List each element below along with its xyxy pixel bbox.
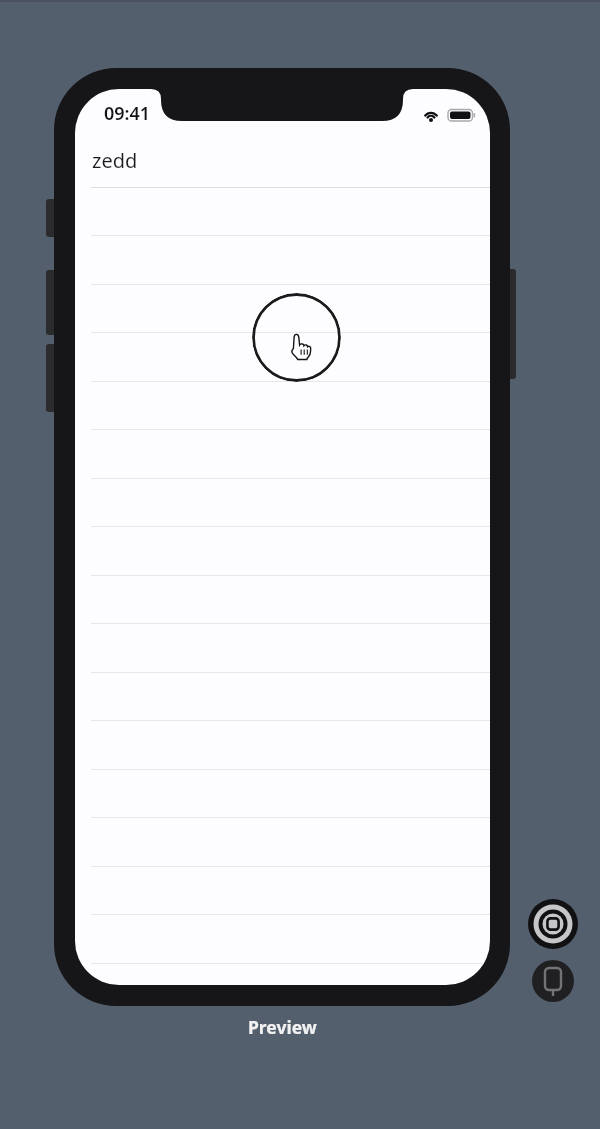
button[interactable]	[252, 293, 341, 382]
staticText: Preview	[248, 1015, 317, 1039]
staticText: 09:41	[104, 101, 151, 126]
button[interactable]	[532, 960, 574, 1002]
button[interactable]	[528, 899, 578, 949]
staticText: zedd	[92, 147, 138, 174]
